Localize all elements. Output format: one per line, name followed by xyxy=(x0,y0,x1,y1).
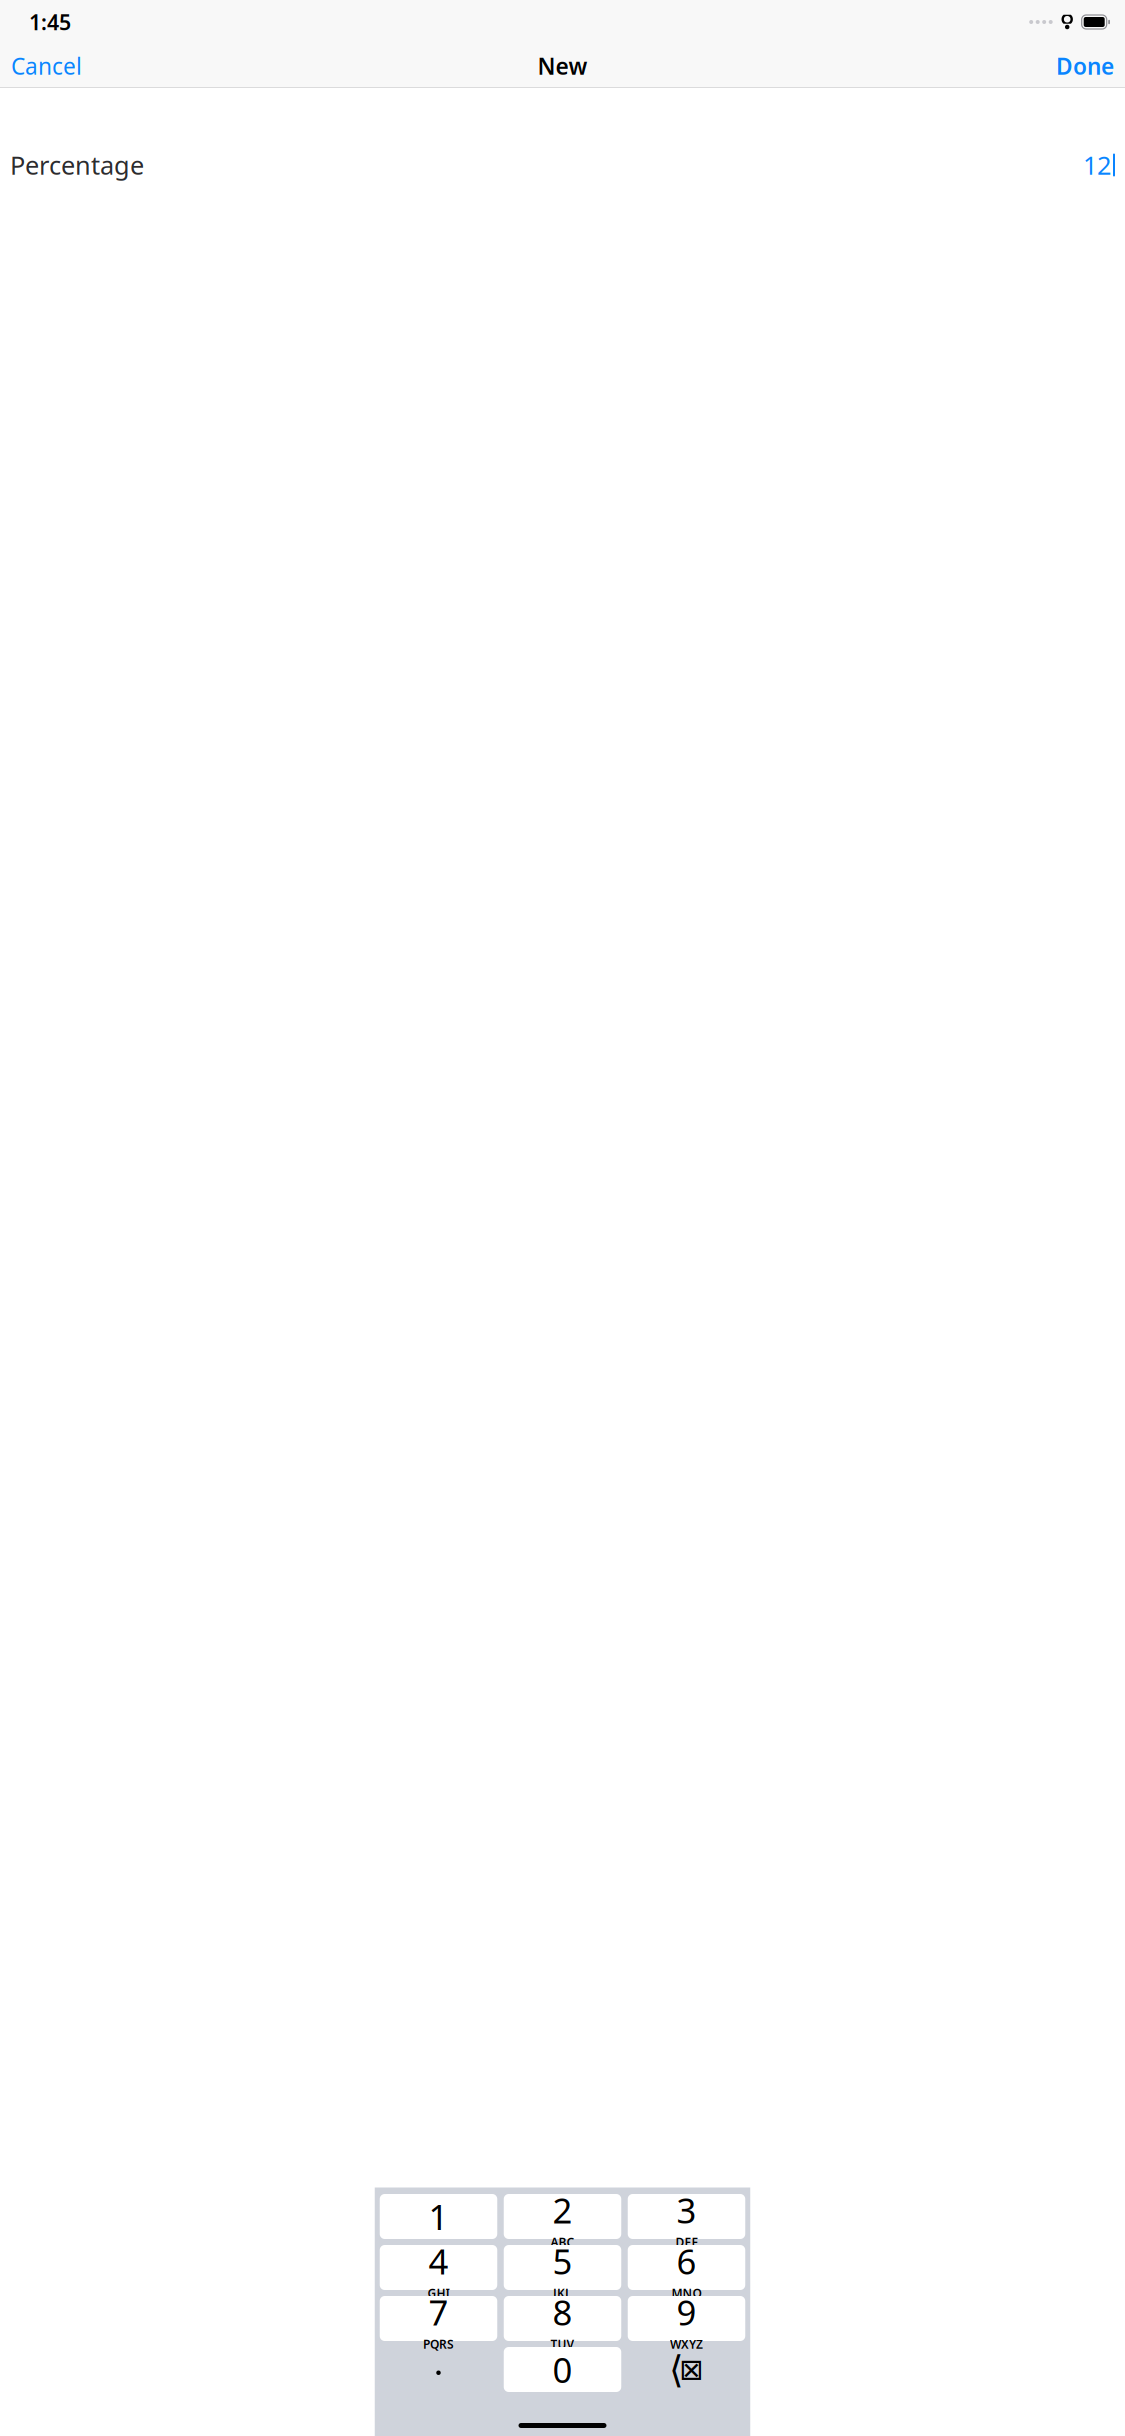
staticText: 4 xyxy=(428,2238,448,2284)
button[interactable]: 4 xyxy=(380,2245,497,2290)
staticText: 6 xyxy=(676,2238,696,2284)
staticText: 12 xyxy=(1083,148,1111,182)
staticText: 1 xyxy=(428,2193,448,2239)
staticText: MNO xyxy=(671,2285,701,2301)
button[interactable]: Decimal point xyxy=(380,2347,497,2392)
staticText: 2 xyxy=(552,2187,572,2233)
staticText: DEF xyxy=(675,2234,697,2250)
button[interactable]: 1 xyxy=(380,2194,497,2239)
staticText: Done xyxy=(1056,51,1114,81)
staticText: ABC xyxy=(550,2234,574,2250)
button[interactable]: 9 xyxy=(628,2296,745,2341)
staticText: 3 xyxy=(676,2187,696,2233)
button[interactable]: 2 xyxy=(504,2194,621,2239)
staticText: Percentage xyxy=(10,148,144,182)
button[interactable]: 3 xyxy=(628,2194,745,2239)
staticText: 7 xyxy=(428,2289,448,2335)
staticText: TUV xyxy=(550,2336,574,2352)
button[interactable]: 5 xyxy=(504,2245,621,2290)
staticText: 9 xyxy=(676,2289,696,2335)
button[interactable]: Delete xyxy=(628,2347,745,2392)
button[interactable]: Done xyxy=(1045,42,1125,90)
button[interactable]: 0 xyxy=(504,2347,621,2392)
button[interactable]: 7 xyxy=(380,2296,497,2341)
staticText: 8 xyxy=(552,2289,572,2335)
staticText: ⊠ xyxy=(679,2353,704,2386)
button[interactable]: 6 xyxy=(628,2245,745,2290)
staticText: PQRS xyxy=(423,2336,454,2352)
staticText: ⟨ xyxy=(669,2348,684,2391)
staticText: 0 xyxy=(552,2346,572,2392)
button[interactable]: Cancel xyxy=(0,42,93,90)
staticText: New xyxy=(537,51,587,81)
staticText: 1:45 xyxy=(29,8,71,36)
staticText: GHI xyxy=(427,2285,449,2301)
staticText: JKL xyxy=(553,2285,572,2301)
staticText: Cancel xyxy=(11,51,82,81)
button[interactable]: 8 xyxy=(504,2296,621,2341)
staticText: 5 xyxy=(552,2238,572,2284)
staticText: WXYZ xyxy=(670,2336,703,2352)
